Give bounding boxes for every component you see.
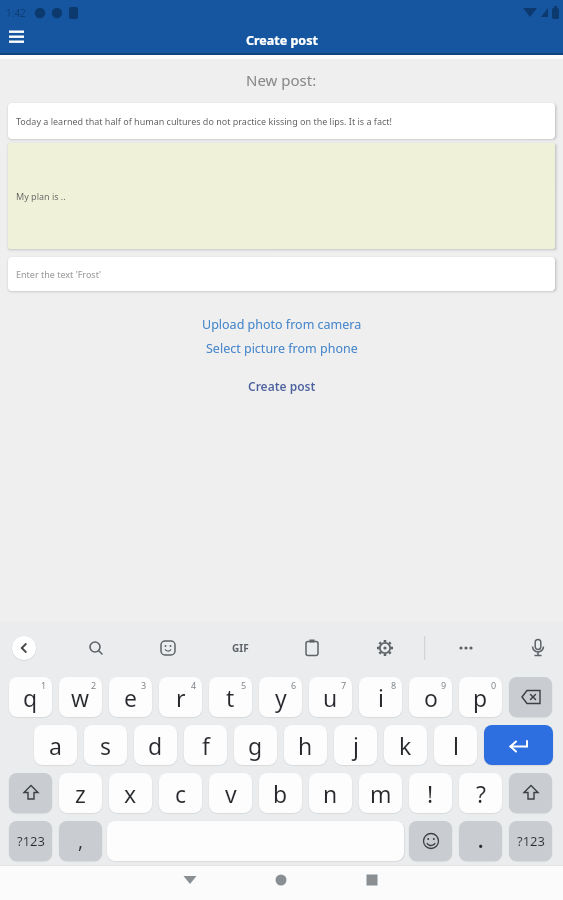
button[interactable]: p	[459, 677, 502, 717]
button[interactable]: n	[309, 773, 352, 813]
button[interactable]: Upload photo from camera	[200, 314, 364, 335]
button[interactable]: o	[409, 677, 452, 717]
button[interactable]	[522, 632, 554, 664]
staticText: s	[100, 730, 112, 761]
staticText: Select picture from phone	[206, 340, 358, 357]
staticText: 1	[41, 679, 47, 691]
button[interactable]: Enter the text 'Frost'	[8, 257, 555, 291]
button[interactable]	[168, 862, 212, 897]
button[interactable]: x	[109, 773, 152, 813]
button[interactable]: h	[284, 725, 327, 765]
button[interactable]: ?123	[509, 821, 552, 861]
button[interactable]	[296, 632, 328, 664]
staticText: ?123	[517, 832, 545, 850]
button[interactable]: i	[359, 677, 402, 717]
button[interactable]: q	[9, 677, 52, 717]
staticText: p	[473, 682, 488, 713]
button[interactable]: c	[159, 773, 202, 813]
staticText: 4	[191, 679, 197, 691]
button[interactable]	[259, 862, 303, 897]
button[interactable]: f	[184, 725, 227, 765]
staticText: 8	[391, 679, 397, 691]
button[interactable]: m	[359, 773, 402, 813]
staticText: g	[248, 730, 263, 761]
button[interactable]: .	[459, 821, 502, 861]
staticText: b	[273, 778, 288, 809]
button[interactable]	[350, 862, 394, 897]
button[interactable]: l	[434, 725, 477, 765]
staticText: h	[298, 730, 313, 761]
button[interactable]: j	[334, 725, 377, 765]
button[interactable]: s	[84, 725, 127, 765]
staticText: My plan is ..	[16, 190, 66, 202]
staticText: Create post	[246, 32, 318, 49]
staticText: GIF	[232, 641, 249, 655]
button[interactable]: b	[259, 773, 302, 813]
staticText: v	[225, 778, 237, 809]
staticText: 2	[91, 679, 97, 691]
button[interactable]: w	[59, 677, 102, 717]
button[interactable]	[152, 632, 184, 664]
staticText: ?123	[17, 832, 45, 850]
staticText: e	[124, 682, 137, 713]
button[interactable]	[12, 636, 36, 660]
button[interactable]: !	[409, 773, 452, 813]
staticText: Create post	[248, 378, 316, 394]
staticText: i	[378, 682, 384, 713]
staticText: Enter the text 'Frost'	[16, 268, 102, 280]
staticText: k	[399, 730, 412, 761]
button[interactable]: Today a learned that half of human cultu…	[8, 103, 555, 139]
staticText: x	[124, 778, 137, 809]
staticText: z	[75, 778, 86, 809]
button[interactable]: d	[134, 725, 177, 765]
button[interactable]	[2, 25, 32, 55]
staticText: f	[202, 730, 210, 761]
staticText: n	[323, 778, 338, 809]
staticText: New post:	[246, 70, 317, 90]
button[interactable]: ,	[59, 821, 102, 861]
staticText: !	[427, 778, 434, 809]
staticText: w	[71, 682, 90, 713]
staticText: 9	[441, 679, 447, 691]
button[interactable]: e	[109, 677, 152, 717]
staticText: ?	[476, 778, 486, 809]
button[interactable]	[484, 725, 553, 765]
staticText: 7	[341, 679, 347, 691]
button[interactable]: GIF	[224, 632, 256, 664]
staticText: q	[23, 682, 38, 713]
button[interactable]	[80, 632, 112, 664]
staticText: 3	[141, 679, 147, 691]
button[interactable]: Create post	[246, 376, 318, 396]
button[interactable]: t	[209, 677, 252, 717]
button[interactable]	[509, 773, 552, 813]
staticText: j	[353, 730, 359, 761]
button[interactable]: z	[59, 773, 102, 813]
button[interactable]: u	[309, 677, 352, 717]
button[interactable]: y	[259, 677, 302, 717]
staticText: l	[453, 730, 459, 761]
button[interactable]: Select picture from phone	[204, 338, 360, 359]
button[interactable]	[509, 677, 552, 717]
button[interactable]: a	[34, 725, 77, 765]
button[interactable]: ?	[459, 773, 502, 813]
staticText: Today a learned that half of human cultu…	[16, 115, 392, 127]
button[interactable]: ?123	[9, 821, 52, 861]
button[interactable]: My plan is ..	[8, 143, 555, 249]
button[interactable]: r	[159, 677, 202, 717]
button[interactable]	[369, 632, 401, 664]
button[interactable]	[409, 821, 452, 861]
staticText: a	[49, 730, 62, 761]
staticText: y	[275, 682, 287, 713]
staticText: 1:42	[6, 6, 26, 20]
staticText: Upload photo from camera	[202, 316, 362, 333]
button[interactable]: v	[209, 773, 252, 813]
staticText: d	[148, 730, 163, 761]
button[interactable]	[450, 632, 482, 664]
button[interactable]: k	[384, 725, 427, 765]
staticText: m	[370, 778, 392, 809]
staticText: 6	[291, 679, 297, 691]
staticText: c	[175, 778, 187, 809]
button[interactable]	[9, 773, 52, 813]
button[interactable]: g	[234, 725, 277, 765]
